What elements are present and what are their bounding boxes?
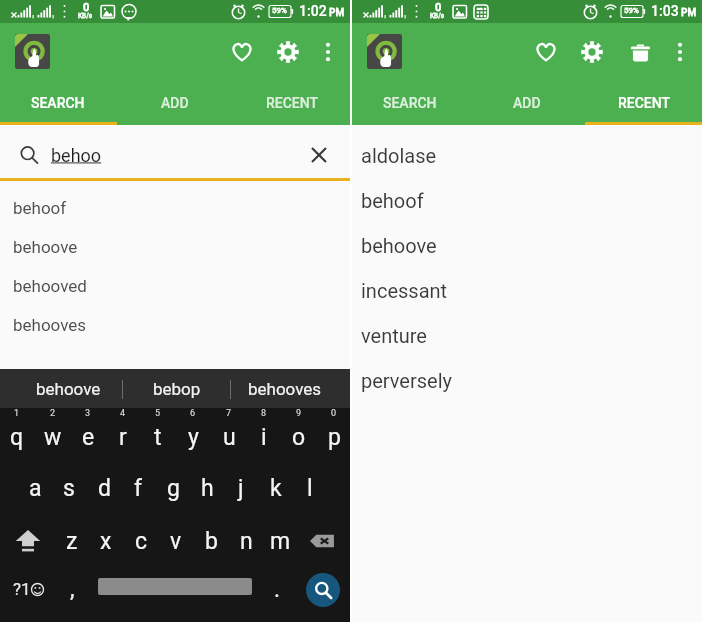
button[interactable]: o xyxy=(282,420,316,454)
button[interactable]: behoove xyxy=(352,223,702,268)
staticText: PM xyxy=(329,7,345,19)
button[interactable]: h xyxy=(190,471,224,505)
button[interactable]: incessant xyxy=(352,268,702,313)
staticText: s xyxy=(63,475,75,502)
staticText: r xyxy=(119,424,127,451)
button[interactable]: behoove xyxy=(0,227,350,266)
staticText: q xyxy=(10,424,24,451)
button[interactable]: SEARCH xyxy=(0,80,116,125)
button[interactable]: Favorite xyxy=(526,32,566,72)
staticText: , xyxy=(70,576,75,603)
button[interactable]: behooved xyxy=(0,266,350,305)
button[interactable]: RECENT xyxy=(233,80,350,125)
button[interactable]: App icon xyxy=(15,34,50,69)
button[interactable]: n xyxy=(229,524,263,558)
staticText: . xyxy=(274,576,281,603)
button[interactable]: ADD xyxy=(468,80,585,125)
button[interactable]: Space xyxy=(98,578,252,595)
staticText: 3 xyxy=(85,408,91,419)
staticText: 59% xyxy=(272,6,287,15)
button[interactable]: g xyxy=(156,471,190,505)
button[interactable]: w xyxy=(36,420,70,454)
staticText: ADD xyxy=(513,95,541,111)
staticText: x xyxy=(100,528,112,555)
button[interactable]: More options xyxy=(660,32,700,72)
button[interactable]: p xyxy=(317,420,351,454)
button[interactable]: Shift xyxy=(9,522,47,560)
staticText: i xyxy=(261,424,267,451)
staticText: KB/s xyxy=(78,12,93,20)
button[interactable]: u xyxy=(212,420,246,454)
staticText: 59% xyxy=(624,6,639,15)
staticText: j xyxy=(238,475,244,502)
staticText: k xyxy=(270,475,282,502)
button[interactable]: venture xyxy=(352,313,702,358)
button[interactable]: e xyxy=(71,420,105,454)
staticText: l xyxy=(307,475,313,502)
button[interactable]: k xyxy=(259,471,293,505)
button[interactable]: . xyxy=(260,572,294,606)
button[interactable]: t xyxy=(141,420,175,454)
staticText: behoo xyxy=(51,145,102,166)
button[interactable]: m xyxy=(263,524,297,558)
button[interactable]: Favorite xyxy=(222,32,262,72)
staticText: h xyxy=(201,475,214,502)
staticText: u xyxy=(223,424,236,451)
staticText: 1:02 xyxy=(299,3,327,19)
button[interactable]: l xyxy=(293,471,327,505)
button[interactable]: Backspace xyxy=(304,523,340,559)
staticText: 1 xyxy=(14,408,20,419)
button[interactable]: s xyxy=(52,471,86,505)
button[interactable]: behooves xyxy=(231,370,338,408)
button[interactable]: SEARCH xyxy=(352,80,468,125)
staticText: behooves xyxy=(248,379,322,399)
button[interactable]: behoof xyxy=(352,178,702,223)
staticText: 0 xyxy=(83,1,90,14)
button[interactable]: behoof xyxy=(0,188,350,227)
staticText: bebop xyxy=(153,379,201,399)
button[interactable]: q xyxy=(0,420,34,454)
staticText: incessant xyxy=(361,279,448,302)
button[interactable]: j xyxy=(224,471,258,505)
staticText: 1:03 xyxy=(651,3,679,19)
button[interactable]: Symbols and emoji xyxy=(2,571,54,607)
button[interactable]: Search xyxy=(306,573,340,607)
button[interactable]: ADD xyxy=(116,80,233,125)
staticText: 5 xyxy=(155,408,161,419)
staticText: d xyxy=(98,475,111,502)
staticText: SEARCH xyxy=(383,95,437,111)
button[interactable]: z xyxy=(55,524,89,558)
button[interactable]: y xyxy=(176,420,210,454)
button[interactable]: perversely xyxy=(352,358,702,403)
button[interactable]: behooves xyxy=(0,305,350,344)
button[interactable]: aldolase xyxy=(352,133,702,178)
button[interactable]: f xyxy=(121,471,155,505)
button[interactable]: RECENT xyxy=(585,80,702,125)
staticText: b xyxy=(205,528,218,555)
staticText: behooved xyxy=(13,276,87,296)
button[interactable]: a xyxy=(18,471,52,505)
button[interactable]: c xyxy=(124,524,158,558)
button[interactable]: Delete xyxy=(620,32,660,72)
button[interactable]: Settings xyxy=(572,32,612,72)
staticText: m xyxy=(270,528,291,555)
button[interactable]: d xyxy=(87,471,121,505)
staticText: 6 xyxy=(190,408,196,419)
staticText: 7 xyxy=(226,408,232,419)
button[interactable]: x xyxy=(89,524,123,558)
button[interactable]: , xyxy=(55,572,89,606)
staticText: perversely xyxy=(361,369,452,392)
button[interactable]: behoove xyxy=(15,370,122,408)
button[interactable]: More options xyxy=(308,32,348,72)
button[interactable]: r xyxy=(106,420,140,454)
staticText: y xyxy=(188,424,199,451)
button[interactable]: v xyxy=(159,524,193,558)
button[interactable]: i xyxy=(247,420,281,454)
button[interactable]: Clear xyxy=(299,135,339,175)
button[interactable]: Settings xyxy=(268,32,308,72)
button[interactable]: b xyxy=(194,524,228,558)
button[interactable]: bebop xyxy=(123,370,230,408)
button[interactable]: App icon xyxy=(367,34,402,69)
staticText: 0 xyxy=(331,408,337,419)
staticText: g xyxy=(167,475,180,502)
